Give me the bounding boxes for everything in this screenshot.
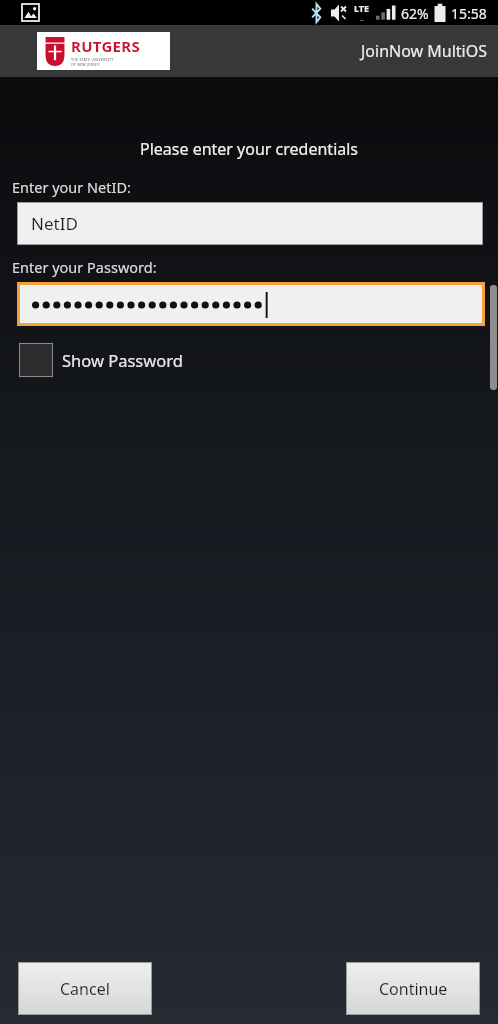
staticText: Show Password — [62, 349, 183, 371]
button[interactable]: Cancel — [18, 962, 152, 1015]
staticText: 15:58 — [451, 4, 487, 23]
button[interactable]: Rutgers — [37, 32, 170, 70]
staticText: Cancel — [60, 978, 110, 1000]
staticText: Enter your NetID: — [12, 177, 131, 197]
button[interactable]: Continue — [346, 962, 480, 1015]
staticText: Enter your Password: — [12, 257, 157, 277]
staticText: Please enter your credentials — [0, 138, 498, 160]
staticText: Continue — [379, 978, 448, 1000]
staticText: OF NEW JERSEY — [71, 62, 100, 67]
staticText: RUTGERS — [71, 36, 141, 56]
staticText: THE STATE UNIVERSITY — [71, 57, 114, 62]
staticText: 62% — [401, 4, 429, 23]
staticText: LTE — [354, 2, 370, 14]
button[interactable]: Password — [20, 285, 482, 323]
staticText: .. — [360, 14, 364, 24]
staticText: NetID — [31, 212, 78, 235]
button[interactable]: Show Password — [19, 340, 183, 380]
staticText: JoinNow MultiOS — [361, 40, 488, 62]
button[interactable]: NetID — [17, 202, 483, 245]
